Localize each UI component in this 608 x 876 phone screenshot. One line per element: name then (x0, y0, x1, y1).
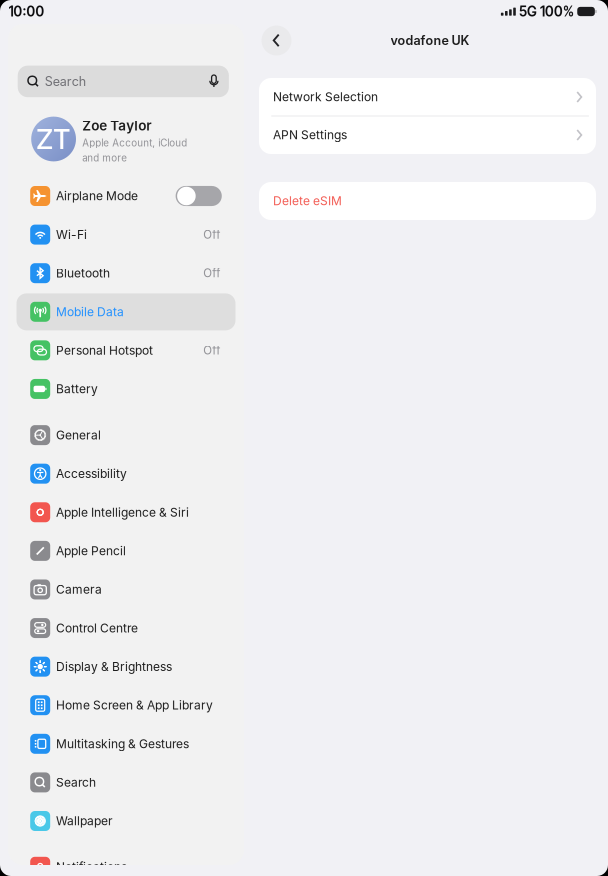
button[interactable]: Airplane Mode (8, 177, 244, 215)
button[interactable]: Mobile Data (8, 292, 244, 331)
button[interactable]: Search (8, 763, 244, 802)
staticText: Battery (56, 382, 98, 396)
button[interactable]: Apple Intelligence & Siri (8, 493, 244, 532)
staticText: vodafone UK (390, 33, 469, 48)
staticText: Accessibility (56, 466, 127, 481)
button[interactable]: Bluetooth (8, 254, 244, 292)
staticText: Wallpaper (56, 814, 113, 828)
staticText: ZT (36, 122, 71, 156)
staticText: APN Settings (273, 128, 347, 142)
button[interactable]: Back (259, 23, 293, 57)
button[interactable]: Home Screen & App Library (8, 686, 244, 724)
button[interactable]: Notifications (8, 847, 244, 876)
staticText: Network Selection (273, 90, 378, 104)
button[interactable]: Personal Hotspot (8, 331, 244, 370)
button[interactable]: Accessibility (8, 454, 244, 493)
staticText: Search (45, 74, 86, 89)
staticText: Delete eSIM (273, 194, 342, 208)
staticText: Off (203, 343, 220, 357)
staticText: Camera (56, 582, 102, 597)
button[interactable]: Delete eSIM (259, 182, 596, 220)
staticText: Mobile Data (56, 304, 124, 319)
staticText: 10:00 (8, 3, 44, 20)
button[interactable]: Control Centre (8, 609, 244, 647)
staticText: Display & Brightness (56, 659, 172, 674)
staticText: Apple Account, iCloud (82, 137, 187, 149)
staticText: Personal Hotspot (56, 343, 153, 358)
button[interactable]: Wallpaper (8, 802, 244, 840)
button[interactable]: ZT (8, 108, 244, 170)
staticText: Off (203, 228, 220, 242)
button[interactable]: APN Settings (259, 116, 596, 154)
staticText: 5G 100% (519, 3, 574, 20)
staticText: Bluetooth (56, 266, 110, 280)
button[interactable]: Display & Brightness (8, 647, 244, 686)
staticText: Airplane Mode (56, 189, 138, 203)
staticText: General (56, 428, 101, 442)
button[interactable]: Apple Pencil (8, 532, 244, 570)
staticText: Off (203, 266, 220, 280)
button[interactable]: Camera (8, 570, 244, 609)
staticText: Zoe Taylor (82, 117, 151, 134)
staticText: Home Screen & App Library (56, 698, 213, 712)
staticText: Wi-Fi (56, 227, 87, 242)
staticText: Apple Intelligence & Siri (56, 505, 189, 519)
staticText: and more (82, 152, 127, 164)
button[interactable]: General (8, 416, 244, 454)
button[interactable]: Battery (8, 370, 244, 408)
button[interactable]: Wi-Fi (8, 215, 244, 254)
staticText: Apple Pencil (56, 544, 126, 558)
staticText: Search (56, 775, 96, 790)
button[interactable]: Multitasking & Gestures (8, 724, 244, 763)
staticText: Multitasking & Gestures (56, 737, 189, 751)
button[interactable]: Search (18, 66, 229, 97)
staticText: Notifications (56, 859, 127, 874)
staticText: Control Centre (56, 621, 138, 635)
button[interactable]: Network Selection (259, 78, 596, 116)
